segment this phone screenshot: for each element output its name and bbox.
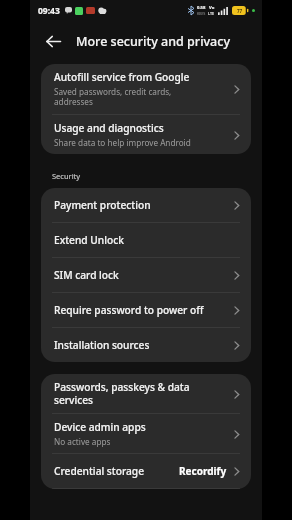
staticText: 77 — [237, 8, 243, 14]
button[interactable]: Extend Unlock — [41, 223, 251, 257]
button[interactable]: SIM card lock — [41, 258, 251, 292]
button[interactable]: Usage and diagnostics — [41, 115, 251, 154]
staticText: 0.58 — [197, 5, 206, 11]
button[interactable]: Passwords, passkeys & data services — [41, 374, 251, 413]
button[interactable]: Require password to power off — [41, 293, 251, 327]
button[interactable]: Device admin apps — [41, 414, 251, 453]
staticText: More security and privacy — [76, 33, 230, 50]
staticText: KB/S — [197, 11, 206, 16]
button[interactable]: Payment protection — [41, 188, 251, 222]
staticText: Usage and diagnostics — [54, 121, 164, 135]
staticText: No active apps — [54, 436, 111, 447]
staticText: SIM card lock — [54, 268, 119, 282]
staticText: Recordify — [179, 464, 227, 478]
staticText: LTE — [208, 11, 215, 16]
staticText: Extend Unlock — [54, 233, 124, 247]
staticText: Security — [52, 171, 81, 181]
staticText: Payment protection — [54, 198, 151, 212]
staticText: Saved passwords, credit cards, addresses — [54, 86, 172, 108]
button[interactable]: Installation sources — [41, 328, 251, 362]
staticText: Share data to help improve Android — [54, 137, 191, 148]
staticText: Autofill service from Google — [54, 70, 190, 84]
staticText: Passwords, passkeys & data services — [54, 380, 190, 407]
button[interactable]: Back — [39, 27, 67, 55]
staticText: Device admin apps — [54, 420, 146, 434]
staticText: 09:43 — [38, 5, 60, 17]
staticText: Vo — [209, 5, 215, 11]
button[interactable]: Credential storage — [41, 454, 251, 488]
button[interactable]: Autofill service from Google — [41, 64, 251, 114]
staticText: Credential storage — [54, 464, 145, 478]
staticText: Installation sources — [54, 338, 150, 352]
staticText: Require password to power off — [54, 303, 204, 317]
